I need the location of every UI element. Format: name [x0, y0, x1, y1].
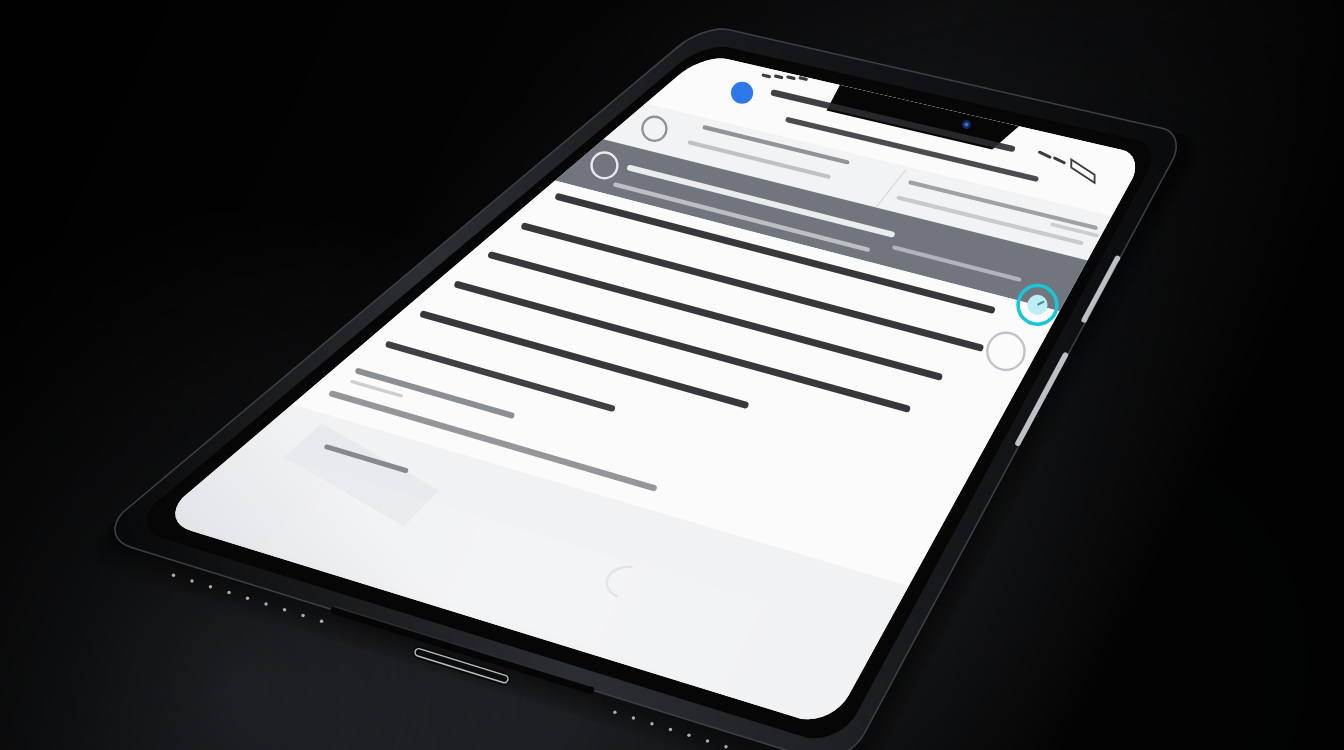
button[interactable]: Archive — [995, 222, 1043, 270]
button[interactable]: Account — [690, 55, 760, 125]
button[interactable]: Timer — [980, 190, 1040, 250]
button[interactable]: Reply — [255, 415, 365, 467]
